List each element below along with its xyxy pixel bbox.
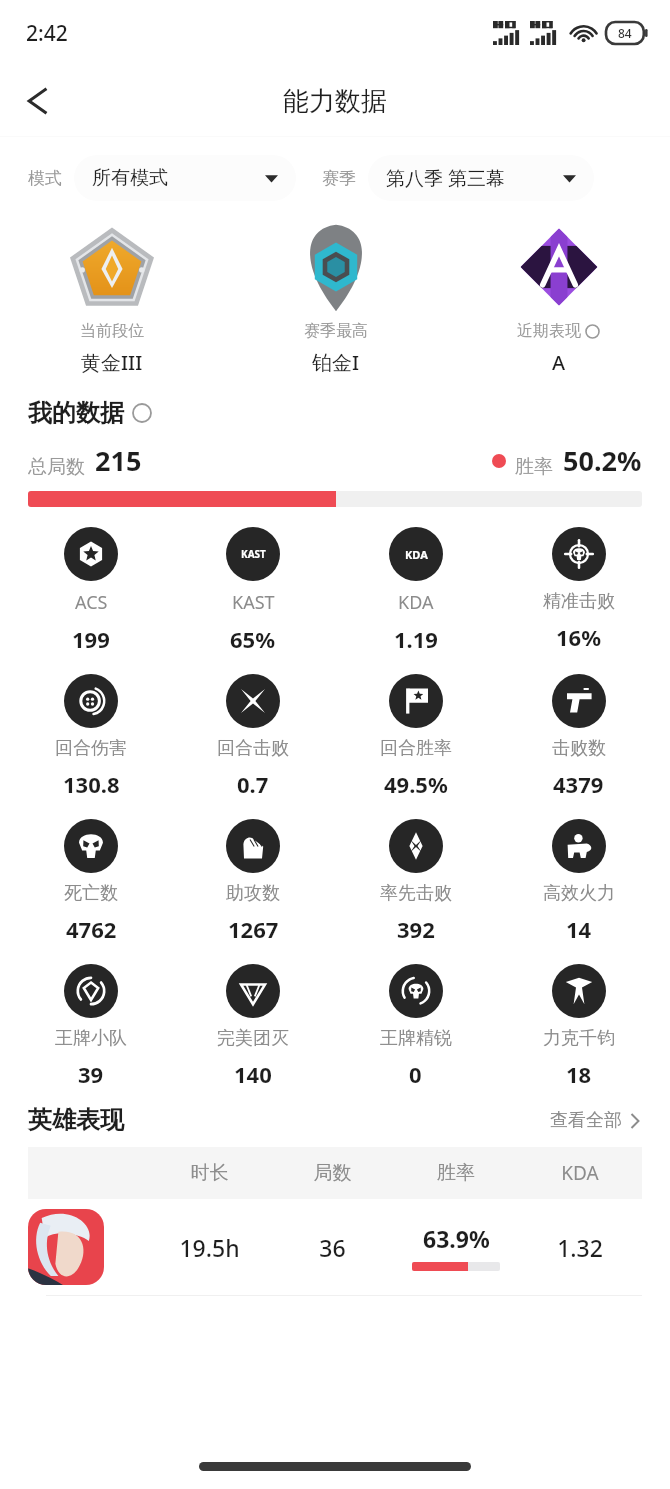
- staticText: 胜率: [394, 1161, 518, 1185]
- staticText: 完美团灭: [217, 1027, 289, 1050]
- staticText: 14: [566, 914, 592, 944]
- staticText: 助攻数: [226, 882, 280, 905]
- button[interactable]: 回合伤害: [10, 674, 172, 799]
- button[interactable]: 回合击败: [172, 674, 334, 799]
- staticText: KDA: [405, 547, 428, 562]
- staticText: KDA: [518, 1160, 642, 1186]
- staticText: 39: [78, 1059, 104, 1089]
- staticText: KAST: [232, 590, 275, 615]
- button[interactable]: 王牌精锐: [334, 964, 497, 1089]
- staticText: 4379: [553, 769, 604, 799]
- staticText: 胜率: [515, 455, 553, 479]
- button[interactable]: KDA: [334, 527, 497, 654]
- staticText: 49.5%: [384, 769, 448, 799]
- staticText: 模式: [28, 168, 62, 189]
- button[interactable]: 高效火力: [497, 819, 660, 944]
- button[interactable]: 查看全部: [550, 1109, 642, 1132]
- staticText: 65%: [230, 624, 276, 654]
- staticText: 击败数: [552, 737, 606, 760]
- staticText: 回合胜率: [380, 737, 452, 760]
- staticText: 2:42: [26, 19, 68, 48]
- staticText: 63.9%: [423, 1223, 490, 1254]
- button[interactable]: 完美团灭: [172, 964, 334, 1089]
- staticText: 36: [271, 1232, 394, 1263]
- staticText: A: [552, 349, 566, 376]
- staticText: 率先击败: [380, 882, 452, 905]
- staticText: 50.2%: [563, 442, 642, 479]
- staticText: 总局数: [28, 455, 85, 479]
- staticText: 力克千钧: [543, 1027, 615, 1050]
- staticText: 所有模式: [92, 166, 168, 190]
- staticText: 能力数据: [283, 85, 387, 118]
- staticText: 赛季: [322, 168, 356, 189]
- staticText: 当前段位: [80, 321, 144, 341]
- button[interactable]: KAST: [172, 527, 334, 654]
- staticText: 近期表现: [517, 321, 581, 341]
- button[interactable]: 王牌小队: [10, 964, 172, 1089]
- staticText: 0.7: [237, 769, 269, 799]
- button[interactable]: 所有模式: [74, 155, 296, 201]
- button[interactable]: 精准击败: [497, 527, 660, 652]
- staticText: 王牌小队: [55, 1027, 127, 1050]
- button[interactable]: 死亡数: [10, 819, 172, 944]
- staticText: 时长: [148, 1161, 271, 1185]
- staticText: 4762: [66, 914, 117, 944]
- staticText: 0: [409, 1059, 422, 1089]
- staticText: 199: [72, 624, 110, 654]
- button[interactable]: 当前段位: [0, 219, 224, 376]
- staticText: 18: [566, 1059, 592, 1089]
- button[interactable]: 近期表现: [447, 219, 670, 376]
- staticText: 1.32: [518, 1232, 642, 1263]
- staticText: 死亡数: [64, 882, 118, 905]
- button[interactable]: 回合胜率: [334, 674, 497, 799]
- button[interactable]: 第八季 第三幕: [368, 155, 594, 201]
- staticText: 回合击败: [217, 737, 289, 760]
- staticText: 精准击败: [543, 590, 615, 613]
- button[interactable]: 力克千钧: [497, 964, 660, 1089]
- staticText: 王牌精锐: [380, 1027, 452, 1050]
- staticText: 140: [234, 1059, 272, 1089]
- button[interactable]: 赛季最高: [224, 219, 447, 376]
- staticText: 1.19: [394, 624, 438, 654]
- staticText: 黄金III: [81, 349, 143, 376]
- staticText: 局数: [271, 1161, 394, 1185]
- button[interactable]: 率先击败: [334, 819, 497, 944]
- staticText: 第八季 第三幕: [386, 165, 505, 191]
- staticText: 高效火力: [543, 882, 615, 905]
- staticText: 英雄表现: [28, 1105, 124, 1135]
- staticText: 铂金I: [312, 349, 360, 376]
- staticText: 回合伤害: [55, 737, 127, 760]
- staticText: 19.5h: [148, 1232, 271, 1263]
- staticText: ACS: [75, 590, 108, 615]
- staticText: KAST: [241, 547, 266, 561]
- staticText: 16%: [556, 622, 602, 652]
- staticText: 1267: [228, 914, 279, 944]
- staticText: 215: [95, 442, 142, 479]
- button[interactable]: Back: [10, 73, 66, 129]
- staticText: 赛季最高: [304, 321, 368, 341]
- staticText: 130.8: [63, 769, 120, 799]
- staticText: 我的数据: [28, 398, 124, 428]
- staticText: 查看全部: [550, 1109, 622, 1132]
- button[interactable]: 19.5h: [28, 1199, 642, 1296]
- staticText: KDA: [398, 590, 434, 615]
- button[interactable]: 助攻数: [172, 819, 334, 944]
- button[interactable]: ACS: [10, 527, 172, 654]
- staticText: 84: [618, 25, 632, 41]
- button[interactable]: 击败数: [497, 674, 660, 799]
- staticText: 392: [397, 914, 435, 944]
- button[interactable]: Info: [132, 403, 152, 423]
